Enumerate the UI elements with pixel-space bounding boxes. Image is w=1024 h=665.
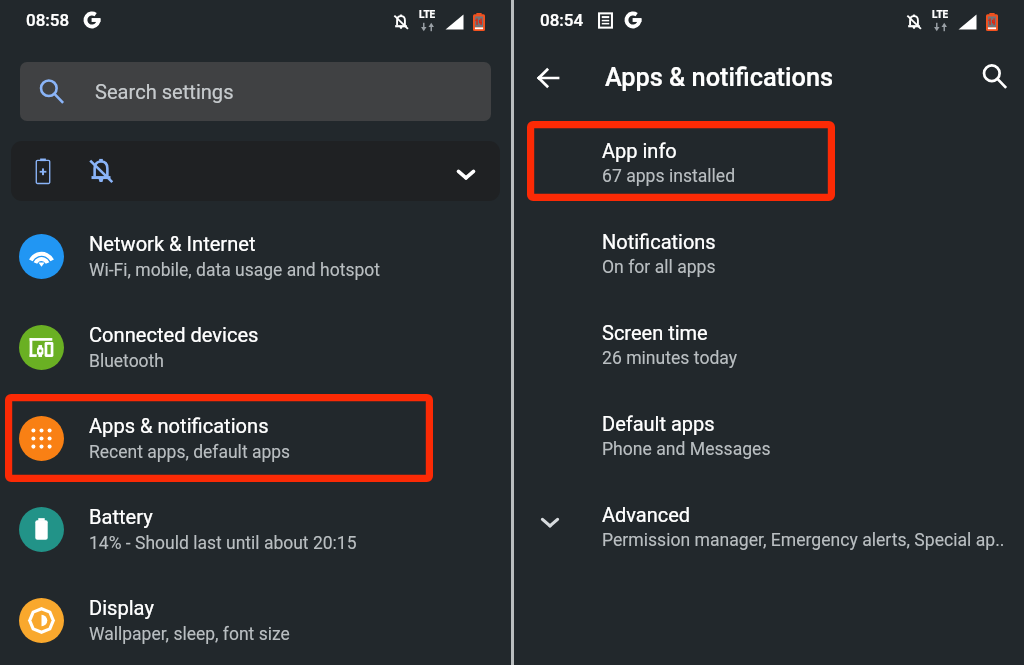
staticText: Display bbox=[89, 596, 154, 620]
staticText: App info bbox=[602, 139, 677, 162]
button[interactable]: Notifications bbox=[514, 208, 1024, 299]
staticText: Bluetooth bbox=[89, 351, 164, 372]
staticText: Wi-Fi, mobile, data usage and hotspot bbox=[89, 260, 380, 281]
button[interactable]: Advanced bbox=[514, 481, 1024, 572]
button[interactable]: Back bbox=[529, 58, 569, 98]
staticText: 08:58 bbox=[26, 10, 70, 30]
button[interactable]: Search settings bbox=[20, 62, 491, 121]
staticText: Search settings bbox=[95, 80, 234, 104]
staticText: Battery bbox=[89, 505, 153, 529]
staticText: Apps & notifications bbox=[605, 63, 834, 93]
staticText: LTE bbox=[419, 9, 436, 21]
button[interactable]: Apps & notifications bbox=[0, 393, 511, 484]
staticText: Advanced bbox=[602, 503, 691, 526]
staticText: Recent apps, default apps bbox=[89, 442, 291, 463]
button[interactable]: Screen time bbox=[514, 299, 1024, 390]
staticText: Permission manager, Emergency alerts, Sp… bbox=[602, 530, 1005, 551]
button[interactable]: Search bbox=[973, 58, 1013, 98]
staticText: Connected devices bbox=[89, 323, 259, 347]
staticText: LTE bbox=[932, 9, 949, 21]
staticText: 67 apps installed bbox=[602, 166, 736, 187]
staticText: On for all apps bbox=[602, 257, 716, 278]
staticText: Default apps bbox=[602, 412, 715, 435]
button[interactable]: Display bbox=[0, 575, 511, 665]
staticText: Network & Internet bbox=[89, 232, 256, 256]
staticText: 14% - Should last until about 20:15 bbox=[89, 533, 357, 554]
staticText: Phone and Messages bbox=[602, 439, 771, 460]
staticText: 26 minutes today bbox=[602, 348, 738, 369]
button[interactable] bbox=[11, 141, 500, 201]
staticText: Notifications bbox=[602, 230, 716, 253]
staticText: Apps & notifications bbox=[89, 414, 269, 438]
button[interactable]: Battery bbox=[0, 484, 511, 575]
staticText: 08:54 bbox=[540, 10, 584, 30]
staticText: Screen time bbox=[602, 321, 708, 344]
button[interactable]: Network & Internet bbox=[0, 211, 511, 302]
button[interactable]: Default apps bbox=[514, 390, 1024, 481]
staticText: Wallpaper, sleep, font size bbox=[89, 624, 290, 645]
button[interactable]: App info bbox=[514, 117, 1024, 208]
button[interactable]: Connected devices bbox=[0, 302, 511, 393]
